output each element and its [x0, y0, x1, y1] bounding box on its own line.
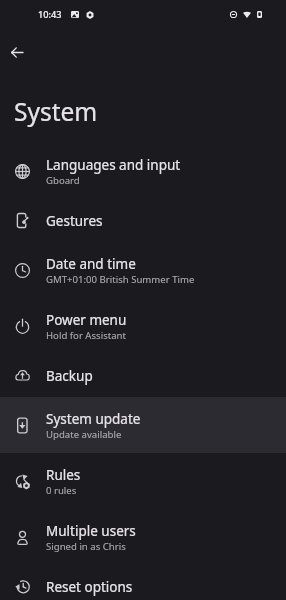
staticText: Languages and input	[46, 156, 181, 174]
staticText: Gestures	[46, 212, 103, 230]
staticText: Signed in as Chris	[46, 540, 126, 553]
staticText: Power menu	[46, 311, 127, 329]
staticText: Hold for Assistant	[46, 329, 126, 342]
button[interactable]: Back	[5, 40, 29, 64]
staticText: Multiple users	[46, 522, 136, 540]
staticText: 0 rules	[46, 484, 77, 497]
button[interactable]: Multiple users	[0, 509, 286, 565]
button[interactable]: Date and time	[0, 242, 286, 298]
staticText: Gboard	[46, 174, 80, 187]
button[interactable]: Reset options	[0, 565, 286, 600]
button[interactable]: Backup	[0, 354, 286, 397]
button[interactable]: Languages and input	[0, 143, 286, 199]
button[interactable]: Gestures	[0, 199, 286, 242]
button[interactable]: Power menu	[0, 298, 286, 354]
staticText: GMT+01:00 British Summer Time	[46, 273, 195, 286]
staticText: Rules	[46, 466, 81, 484]
staticText: Update available	[46, 428, 122, 441]
staticText: System	[14, 95, 98, 128]
button[interactable]: Rules	[0, 453, 286, 509]
button[interactable]: System update	[0, 397, 286, 453]
staticText: 10:43	[38, 8, 62, 21]
staticText: System update	[46, 410, 141, 428]
staticText: Reset options	[46, 578, 133, 596]
staticText: Date and time	[46, 255, 136, 273]
staticText: Backup	[46, 367, 93, 385]
